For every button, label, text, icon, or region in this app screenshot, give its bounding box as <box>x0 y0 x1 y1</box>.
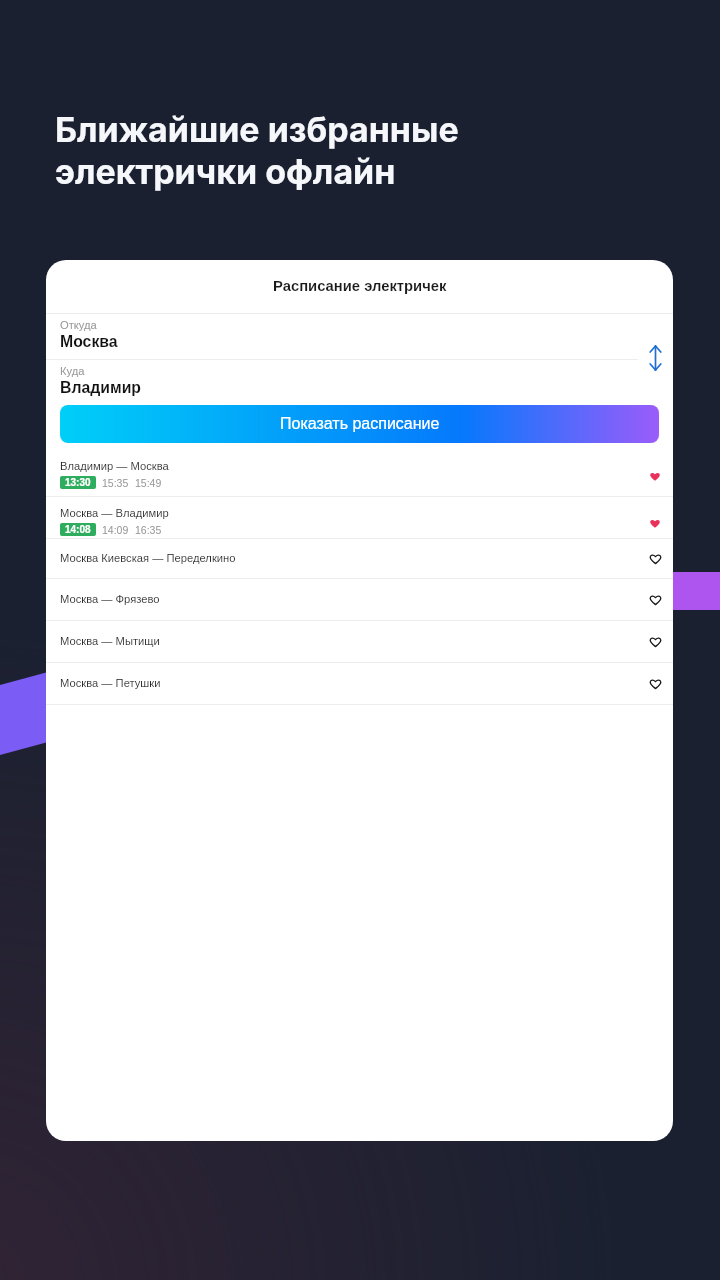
button[interactable]: Убрать из избранного <box>642 463 668 489</box>
staticText: 15:49 <box>135 477 162 489</box>
staticText: Владимир — Москва <box>60 460 169 473</box>
button[interactable]: Показать расписание <box>60 405 659 443</box>
button[interactable]: Откуда <box>46 314 673 359</box>
button[interactable]: Москва — Владимир <box>46 497 673 538</box>
staticText: Москва — Мытищи <box>60 635 633 648</box>
button[interactable]: Добавить в избранное <box>642 629 668 655</box>
staticText: Москва — Владимир <box>60 507 169 520</box>
staticText: Куда <box>60 365 85 378</box>
staticText: 14:08 <box>65 524 91 535</box>
staticText: Откуда <box>60 319 97 332</box>
button[interactable]: Владимир — Москва <box>46 443 673 496</box>
staticText: 16:35 <box>135 524 162 536</box>
button[interactable]: Поменять направление <box>637 314 673 405</box>
staticText: Москва <box>60 333 118 351</box>
staticText: Владимир <box>60 379 142 397</box>
button[interactable]: Москва — Петушки <box>46 663 673 704</box>
button[interactable]: Москва Киевская — Переделкино <box>46 539 673 578</box>
staticText: Расписание электричек <box>273 278 447 295</box>
button[interactable]: Куда <box>46 360 673 405</box>
staticText: Показать расписание <box>280 415 440 433</box>
staticText: Москва — Петушки <box>60 677 633 690</box>
staticText: 15:35 <box>102 477 129 489</box>
button[interactable]: Добавить в избранное <box>642 671 668 697</box>
button[interactable]: Москва — Мытищи <box>46 621 673 662</box>
staticText: 13:30 <box>65 477 91 488</box>
staticText: Ближайшие избранные электрички офлайн <box>55 109 459 192</box>
button[interactable]: Добавить в избранное <box>642 546 668 572</box>
button[interactable]: Москва — Фрязево <box>46 579 673 620</box>
button[interactable]: Убрать из избранного <box>642 510 668 536</box>
button[interactable]: Добавить в избранное <box>642 587 668 613</box>
staticText: 14:09 <box>102 524 129 536</box>
staticText: Москва Киевская — Переделкино <box>60 552 633 565</box>
staticText: Москва — Фрязево <box>60 593 633 606</box>
